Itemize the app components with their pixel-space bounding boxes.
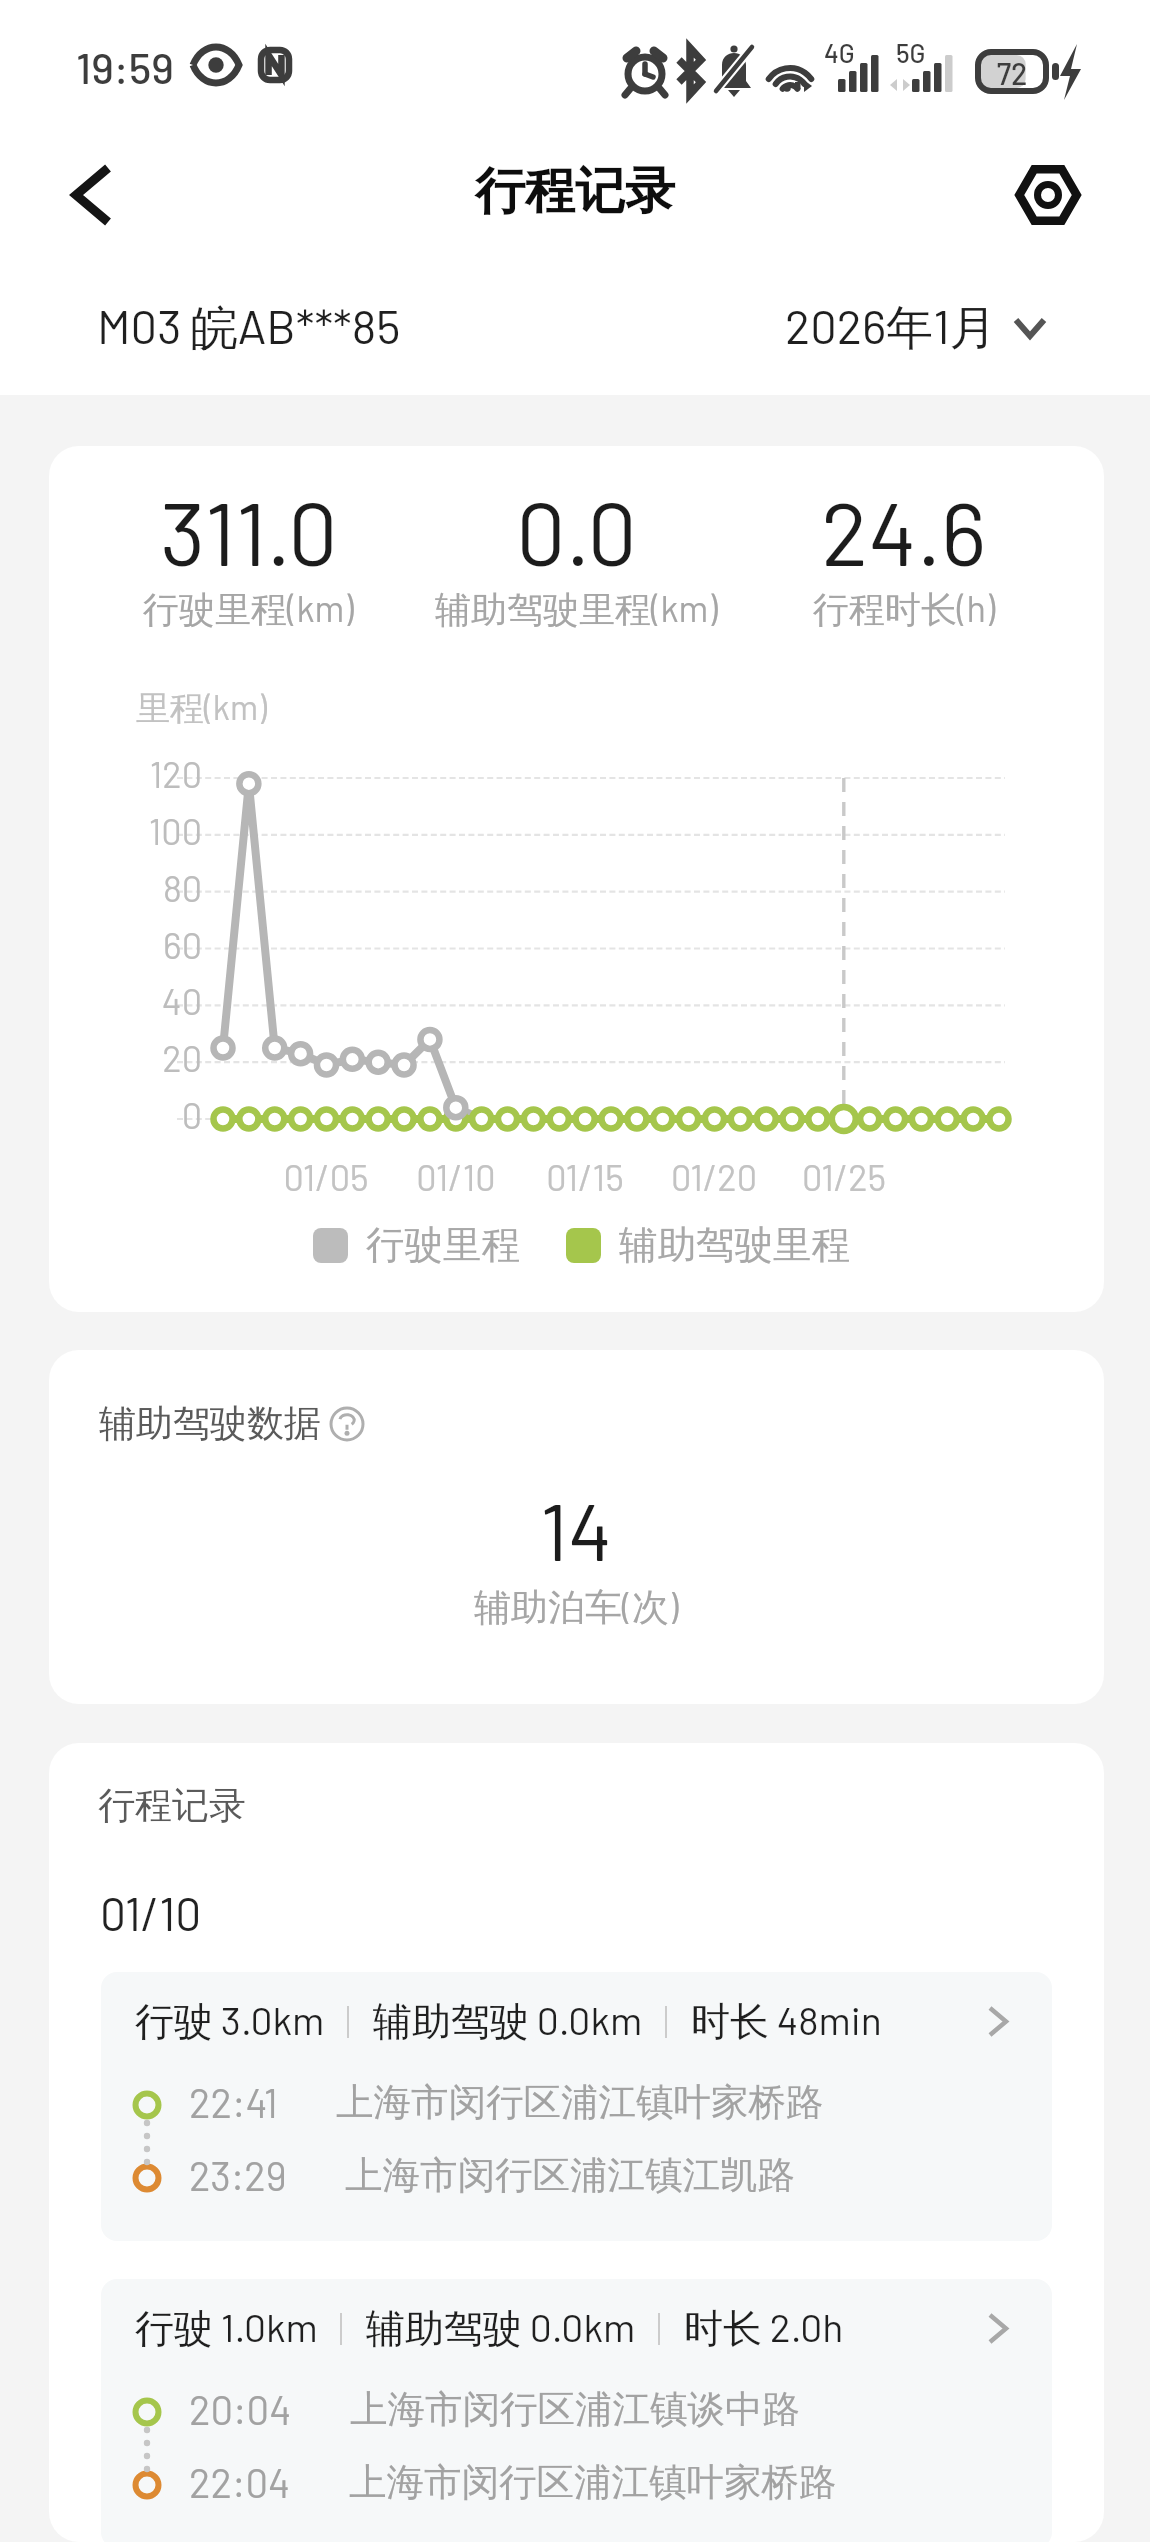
button[interactable]: 行驶 3.0km: [101, 1972, 1052, 2241]
staticText: 行驶 1.0km: [135, 2303, 318, 2354]
staticText: 时长 48min: [691, 1996, 882, 2047]
staticText: 辅助驾驶 0.0km: [373, 1996, 643, 2047]
staticText: 01/10: [100, 1885, 202, 1940]
staticText: 上海市闵行区浦江镇谈中路: [350, 2386, 800, 2433]
staticText: 上海市闵行区浦江镇叶家桥路: [349, 2459, 837, 2506]
staticText: 行程时长(h): [813, 586, 996, 633]
staticText: 100: [49, 809, 202, 852]
staticText: M03 皖AB***85: [97, 297, 401, 358]
staticText: 72: [991, 55, 1033, 91]
staticText: 行驶 3.0km: [135, 1996, 325, 2047]
button[interactable]: Back: [44, 147, 140, 243]
staticText: 19:59: [76, 41, 174, 93]
staticText: 上海市闵行区浦江镇江凯路: [345, 2152, 795, 2199]
staticText: 01/25: [774, 1155, 914, 1198]
staticText: 01/20: [644, 1155, 784, 1198]
staticText: 120: [49, 752, 202, 795]
staticText: 0: [49, 1093, 202, 1136]
staticText: 40: [49, 979, 202, 1022]
staticText: 20:04: [189, 2385, 292, 2433]
staticText: 22:41: [189, 2078, 278, 2126]
button[interactable]: 行驶 1.0km: [101, 2279, 1052, 2542]
button[interactable]: 2026年1月: [785, 297, 1047, 358]
staticText: 5G: [896, 37, 926, 68]
staticText: 辅助驾驶数据: [99, 1400, 321, 1447]
staticText: 01/05: [256, 1155, 396, 1198]
staticText: 24.6: [821, 478, 987, 584]
button[interactable]: Settings: [998, 145, 1098, 245]
staticText: 行驶里程(km): [143, 586, 354, 633]
staticText: 行驶里程: [366, 1221, 520, 1270]
staticText: 辅助驾驶 0.0km: [366, 2303, 636, 2354]
staticText: 辅助驾驶里程(km): [435, 586, 718, 633]
staticText: 22:04: [189, 2458, 291, 2506]
staticText: 时长 2.0h: [684, 2303, 844, 2354]
staticText: 4G: [824, 37, 855, 68]
staticText: 里程(km): [136, 686, 267, 730]
staticText: 80: [49, 866, 202, 909]
staticText: 01/15: [515, 1155, 655, 1198]
staticText: 上海市闵行区浦江镇叶家桥路: [336, 2079, 824, 2126]
staticText: 行程记录: [475, 160, 675, 223]
staticText: 60: [49, 923, 202, 966]
staticText: 20: [49, 1036, 202, 1079]
staticText: 0.0: [516, 478, 637, 584]
staticText: 14: [540, 1481, 613, 1577]
staticText: 23:29: [189, 2151, 287, 2199]
staticText: 辅助驾驶里程: [619, 1221, 850, 1270]
staticText: 2026年1月: [785, 297, 997, 358]
staticText: 01/10: [386, 1155, 526, 1198]
staticText: 辅助泊车(次): [474, 1583, 679, 1631]
staticText: 行程记录: [98, 1782, 246, 1829]
staticText: 311.0: [160, 478, 338, 584]
